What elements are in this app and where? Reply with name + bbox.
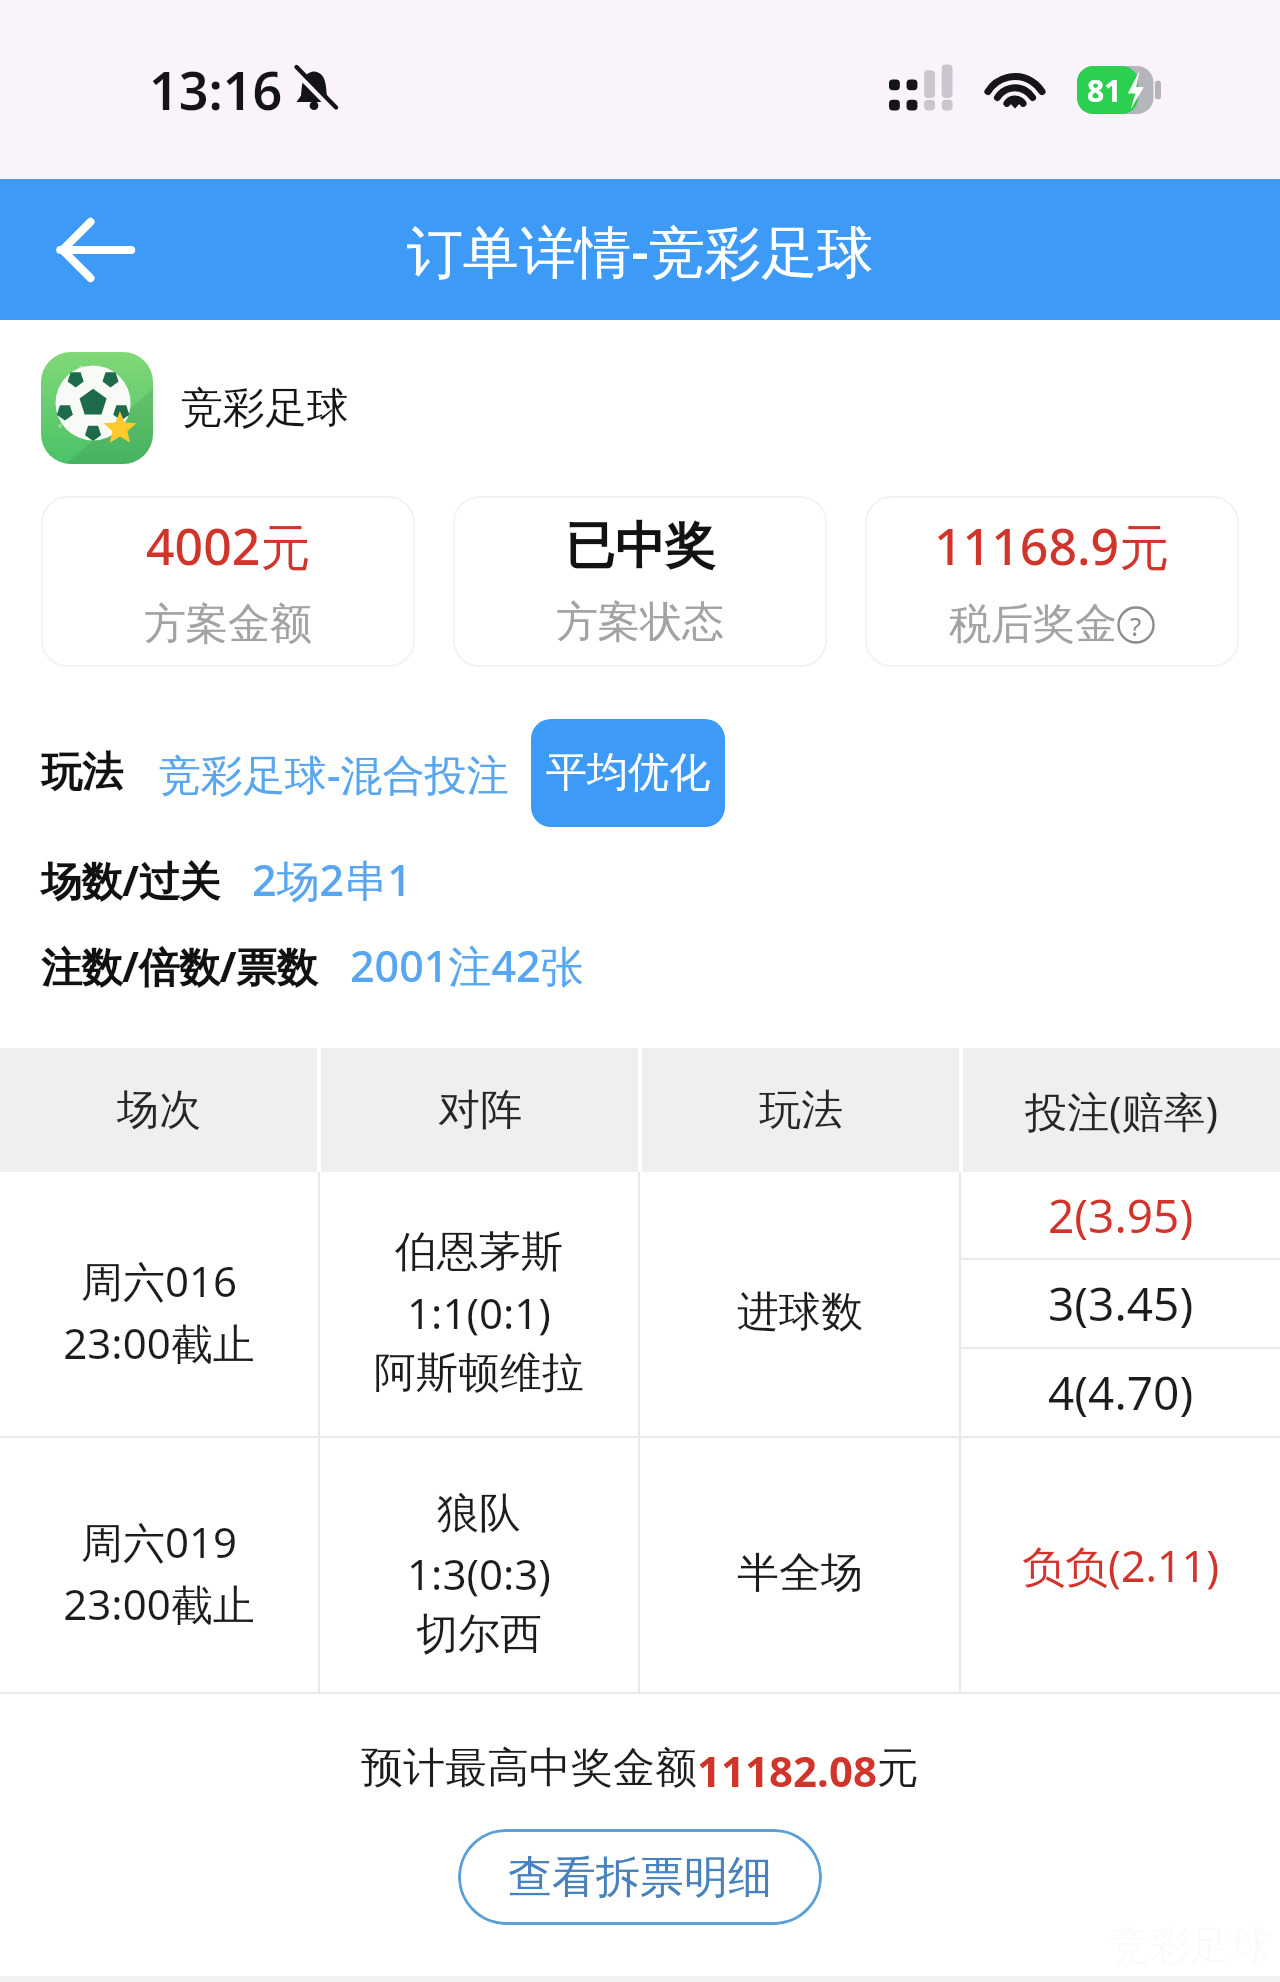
button[interactable]: 周六016 23:00截止 (0, 1172, 1280, 1436)
staticText: 11182.08 (697, 1742, 877, 1799)
staticText: 投注(赔率) (1025, 1082, 1219, 1139)
staticText: 3(3.45) (1048, 1272, 1194, 1335)
button[interactable]: 4002元 (41, 496, 415, 667)
staticText: 13:16 (149, 54, 283, 125)
staticText: 场次 (117, 1084, 201, 1137)
staticText: 对阵 (438, 1084, 522, 1137)
staticText: 玩法 (41, 747, 123, 799)
button[interactable]: 周六019 23:00截止 (0, 1438, 1280, 1692)
staticText: 伯恩茅斯 1:1(0:1) 阿斯顿维拉 (374, 1226, 584, 1399)
staticText: 已中奖 (565, 515, 715, 578)
staticText: 查看拆票明细 (508, 1850, 772, 1905)
button[interactable]: 已中奖 (453, 496, 827, 667)
staticText: 周六016 23:00截止 (63, 1252, 255, 1372)
button[interactable]: Back (47, 202, 143, 298)
staticText: 方案状态 (556, 596, 724, 649)
staticText: 玩法 (759, 1084, 843, 1137)
staticText: ? (1130, 608, 1142, 643)
staticText: 周六019 23:00截止 (63, 1513, 255, 1633)
staticText: 2场2串1 (252, 850, 412, 909)
button[interactable]: 平均优化 (531, 719, 725, 827)
staticText: 进球数 (737, 1286, 863, 1339)
staticText: 预计最高中奖金额 (361, 1742, 697, 1795)
staticText: 半全场 (737, 1547, 863, 1600)
staticText: 竞彩足球-混合投注 (159, 745, 509, 802)
staticText: 订单详情-竞彩足球 (407, 212, 873, 288)
staticText: 竞彩足球 (181, 382, 349, 435)
staticText: 注数/倍数/票数 (41, 938, 318, 994)
button[interactable]: 查看拆票明细 (458, 1829, 822, 1925)
button[interactable]: 11168.9元 (865, 496, 1239, 667)
staticText: 4002元 (146, 512, 311, 580)
staticText: 税后奖金 (949, 598, 1117, 651)
staticText: 负负(2.11) (1022, 1536, 1220, 1595)
staticText: 2001注42张 (350, 936, 584, 995)
staticText: 平均优化 (546, 747, 710, 799)
staticText: 2(3.95) (1048, 1184, 1194, 1247)
staticText: 4(4.70) (1048, 1361, 1194, 1424)
staticText: 狼队 1:3(0:3) 切尔西 (407, 1487, 551, 1660)
staticText: 场数/过关 (41, 852, 220, 908)
staticText: 元 (877, 1742, 919, 1795)
staticText: 11168.9元 (934, 512, 1170, 580)
staticText: 方案金额 (144, 598, 312, 651)
staticText: 81 (1087, 70, 1122, 111)
